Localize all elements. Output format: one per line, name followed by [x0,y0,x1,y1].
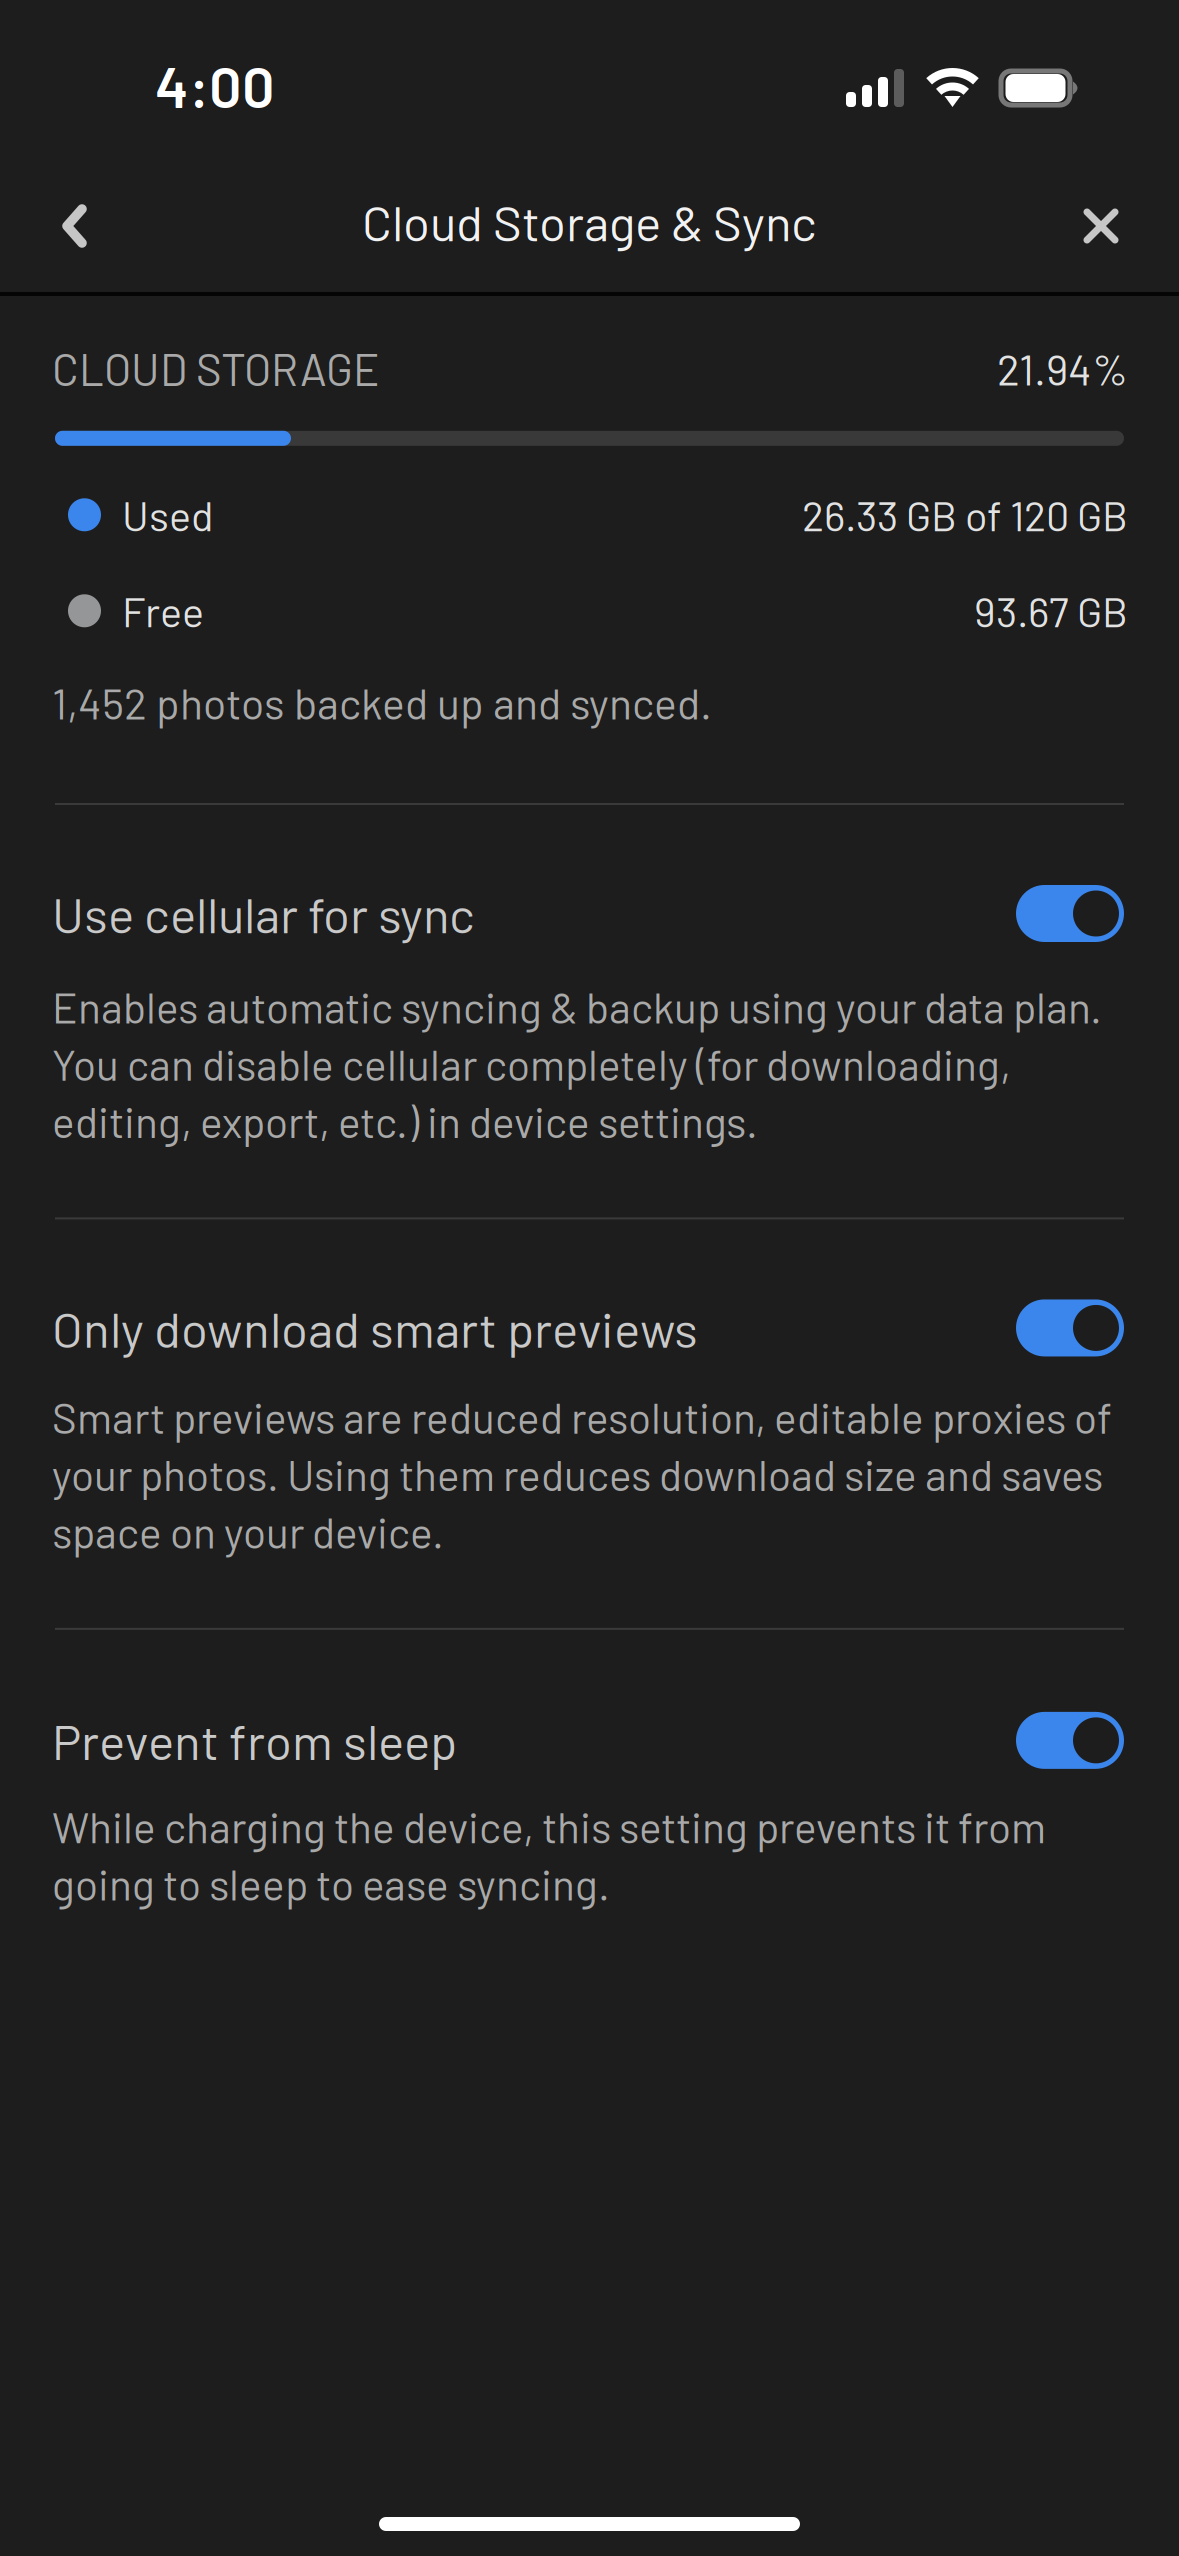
staticText: 26.33 GB of 120 GB [802,490,1128,540]
staticText: 1,452 photos backed up and synced. [52,677,712,728]
button[interactable]: Close [1023,170,1179,292]
staticText: 93.67 GB [974,586,1128,636]
staticText: Use cellular for sync [52,884,475,943]
button[interactable]: Prevent from sleep [55,1693,1124,1788]
staticText: Only download smart previews [52,1298,698,1357]
staticText: Cloud Storage & Sync [362,192,817,251]
staticText: Free [122,586,204,636]
button[interactable]: Use cellular for sync [55,866,1124,961]
button[interactable]: Only download smart previews [55,1280,1124,1375]
staticText: CLOUD STORAGE [52,342,380,395]
staticText: Enables automatic syncing & backup using… [52,981,1102,1146]
staticText: 4:00 [155,51,275,119]
staticText: Used [122,490,214,540]
staticText: 21.94% [997,343,1128,394]
button[interactable]: Back [0,171,147,290]
staticText: While charging the device, this setting … [52,1801,1046,1909]
staticText: Prevent from sleep [52,1711,457,1770]
staticText: Smart previews are reduced resolution, e… [52,1391,1112,1557]
